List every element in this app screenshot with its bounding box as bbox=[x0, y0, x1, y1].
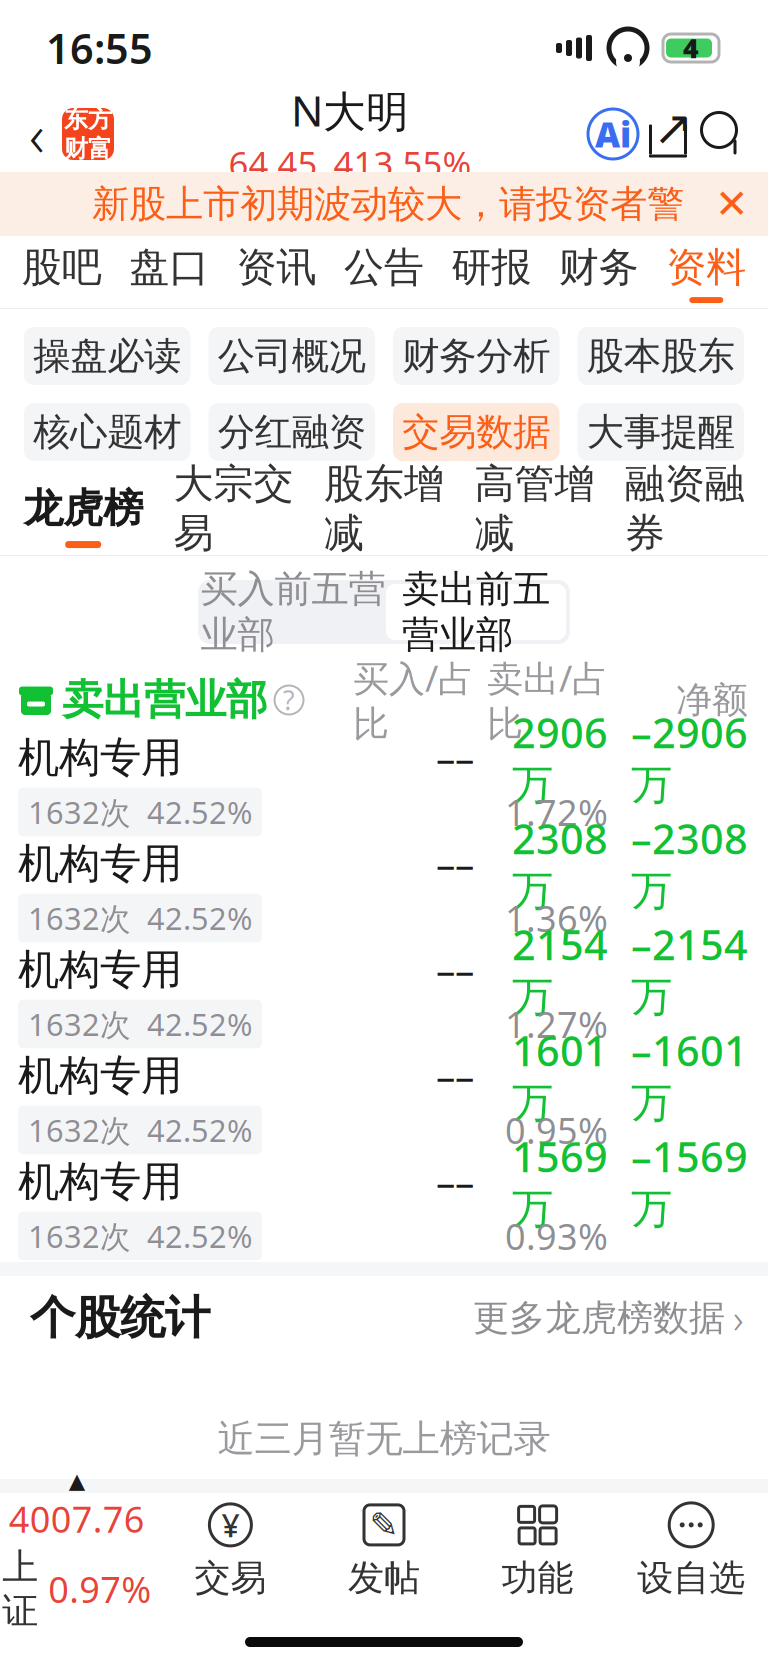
staticText: 16:55 bbox=[46, 21, 153, 75]
staticText: –2906万 bbox=[631, 705, 748, 810]
staticText: 交易 bbox=[194, 1556, 266, 1600]
button[interactable]: 机构专用 bbox=[0, 1050, 768, 1156]
button[interactable]: 机构专用 bbox=[0, 944, 768, 1050]
staticText: ‹ bbox=[29, 95, 45, 173]
staticText: ✎ bbox=[369, 1505, 398, 1544]
staticText: ? bbox=[283, 682, 295, 718]
button[interactable]: 分红融资 bbox=[208, 403, 375, 461]
staticText: 上证 bbox=[2, 1545, 38, 1633]
staticText: –– bbox=[436, 1050, 474, 1101]
button[interactable]: 操盘必读 bbox=[24, 327, 190, 385]
button[interactable]: 资讯 bbox=[223, 236, 330, 308]
staticText: 更多龙虎榜数据 bbox=[473, 1296, 725, 1340]
staticText: 413.55% bbox=[333, 140, 471, 186]
staticText: –– bbox=[436, 732, 474, 783]
button[interactable]: 股东增减 bbox=[309, 477, 459, 555]
staticText: –– bbox=[436, 944, 474, 995]
staticText: 资讯 bbox=[237, 243, 317, 292]
button[interactable]: 机构专用 bbox=[0, 1156, 768, 1262]
staticText: ▲ bbox=[69, 1469, 85, 1493]
staticText: 0.95% bbox=[505, 1106, 608, 1154]
staticText: 融资融券 bbox=[625, 459, 745, 558]
staticText: 财务 bbox=[559, 243, 639, 292]
staticText: 1632次 42.52% bbox=[28, 898, 252, 938]
staticText: 1632次 42.52% bbox=[28, 1216, 252, 1256]
staticText: 净额 bbox=[676, 678, 748, 722]
staticText: 机构专用 bbox=[18, 732, 182, 783]
button[interactable]: 财务 bbox=[545, 236, 652, 308]
staticText: 公司概况 bbox=[218, 333, 366, 379]
staticText: 机构专用 bbox=[18, 1050, 182, 1101]
staticText: 1632次 42.52% bbox=[28, 792, 252, 832]
staticText: 1601万 bbox=[512, 1023, 608, 1128]
staticText: 功能 bbox=[502, 1556, 574, 1600]
button[interactable]: 更多龙虎榜数据 bbox=[473, 1288, 744, 1348]
button[interactable]: 大宗交易 bbox=[158, 477, 309, 555]
button[interactable]: 盘口 bbox=[115, 236, 223, 308]
staticText: 1569万 bbox=[512, 1129, 608, 1234]
button[interactable]: 设自选 bbox=[614, 1496, 768, 1606]
button[interactable]: ✎ bbox=[307, 1496, 461, 1606]
staticText: 4 bbox=[683, 30, 699, 66]
staticText: 公告 bbox=[344, 243, 424, 292]
button[interactable]: 资料 bbox=[653, 236, 760, 308]
staticText: 资料 bbox=[666, 243, 746, 292]
staticText: 个股统计 bbox=[30, 1290, 210, 1346]
staticText: 分红融资 bbox=[218, 409, 366, 455]
staticText: 2154万 bbox=[512, 917, 608, 1022]
button[interactable]: 关闭提示 bbox=[704, 176, 760, 232]
staticText: 4007.76 bbox=[9, 1495, 145, 1543]
staticText: 发帖 bbox=[348, 1556, 420, 1600]
staticText: 盘口 bbox=[129, 243, 209, 292]
button[interactable]: 股本股东 bbox=[577, 327, 744, 385]
button[interactable]: 上证指数 bbox=[0, 1496, 154, 1606]
staticText: 机构专用 bbox=[18, 944, 182, 995]
staticText: 机构专用 bbox=[18, 838, 182, 889]
button[interactable]: 高管增减 bbox=[459, 477, 610, 555]
button[interactable]: 大事提醒 bbox=[577, 403, 744, 461]
button[interactable]: 股吧 bbox=[8, 236, 115, 308]
button[interactable]: 卖出前五营业部 bbox=[386, 584, 566, 640]
staticText: 新股上市初期波动较大，请投资者警 bbox=[92, 181, 684, 227]
staticText: 卖出营业部 bbox=[62, 675, 267, 725]
staticText: 股本股东 bbox=[587, 333, 735, 379]
button[interactable]: 买入前五营业部 bbox=[200, 580, 386, 644]
staticText: –1569万 bbox=[631, 1129, 748, 1234]
staticText: 交易数据 bbox=[402, 409, 550, 455]
staticText: 财务分析 bbox=[402, 333, 550, 379]
button[interactable]: 机构专用 bbox=[0, 838, 768, 944]
button[interactable]: 机构专用 bbox=[0, 732, 768, 838]
button[interactable]: 公司概况 bbox=[208, 327, 375, 385]
staticText: 东方 bbox=[64, 104, 112, 134]
staticText: 财富 bbox=[64, 134, 112, 163]
staticText: –2308万 bbox=[631, 811, 748, 916]
button[interactable]: 融资融券 bbox=[610, 477, 760, 555]
button[interactable]: 功能 bbox=[461, 1496, 614, 1606]
button[interactable]: 核心题材 bbox=[24, 403, 190, 461]
button[interactable]: 东方财富 bbox=[56, 108, 114, 160]
button[interactable]: 搜索 bbox=[696, 107, 748, 161]
staticText: 大宗交易 bbox=[174, 459, 294, 558]
button[interactable]: 分享 bbox=[640, 107, 696, 161]
staticText: 大事提醒 bbox=[587, 409, 735, 455]
button[interactable]: 研报 bbox=[438, 236, 545, 308]
button[interactable]: 公告 bbox=[330, 236, 438, 308]
staticText: ↗ bbox=[653, 101, 693, 155]
button[interactable]: 说明 bbox=[267, 678, 311, 722]
staticText: –– bbox=[436, 1156, 474, 1207]
button[interactable]: AI 助手 bbox=[586, 107, 640, 161]
button[interactable]: 返回 bbox=[18, 101, 56, 167]
button[interactable]: 财务分析 bbox=[393, 327, 559, 385]
staticText: 1.27% bbox=[505, 1000, 608, 1048]
button[interactable]: 龙虎榜 bbox=[8, 477, 158, 555]
button[interactable]: 交易数据 bbox=[393, 403, 559, 461]
button[interactable]: ¥ bbox=[154, 1496, 307, 1606]
staticText: 龙虎榜 bbox=[23, 484, 143, 533]
staticText: › bbox=[733, 1291, 744, 1344]
staticText: –– bbox=[436, 838, 474, 889]
staticText: 1.72% bbox=[505, 788, 608, 836]
staticText: 机构专用 bbox=[18, 1156, 182, 1207]
staticText: 1632次 42.52% bbox=[28, 1004, 252, 1044]
staticText: 64.45 bbox=[228, 140, 317, 186]
staticText: ✕ bbox=[715, 181, 749, 227]
